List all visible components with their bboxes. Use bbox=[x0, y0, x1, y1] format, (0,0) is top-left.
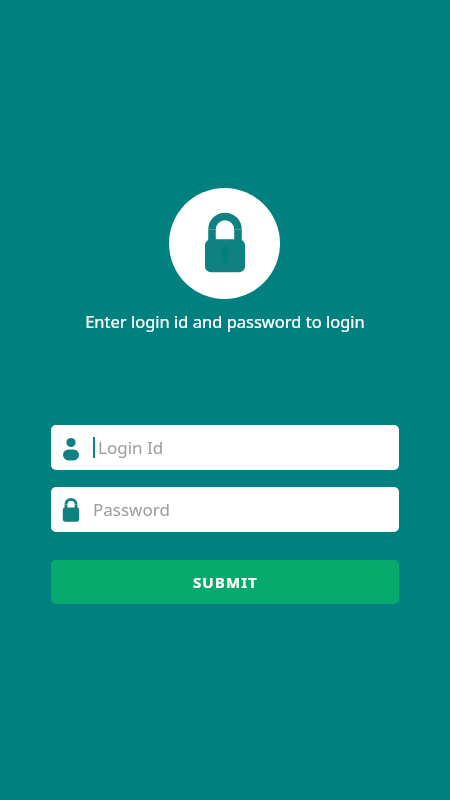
staticText: SUBMIT bbox=[193, 572, 258, 592]
button[interactable]: SUBMIT bbox=[51, 560, 399, 604]
staticText: Password bbox=[93, 498, 170, 521]
button[interactable]: Password bbox=[51, 487, 399, 532]
other: Secure login bbox=[199, 213, 251, 275]
other: Login id bbox=[62, 436, 80, 460]
staticText: Login Id bbox=[98, 436, 164, 459]
other: Password bbox=[62, 498, 80, 522]
staticText: Enter login id and password to login bbox=[85, 310, 365, 332]
button[interactable]: Login Id bbox=[51, 425, 399, 470]
